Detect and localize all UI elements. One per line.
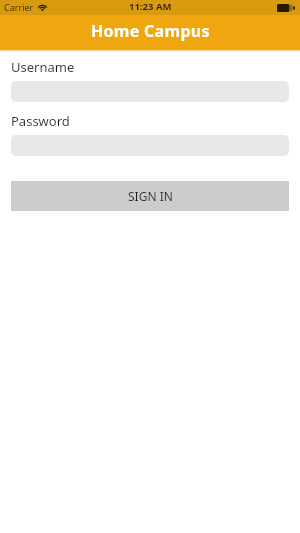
staticText: Username (11, 58, 75, 76)
button[interactable]: SIGN IN (11, 181, 289, 211)
staticText: SIGN IN (128, 188, 173, 204)
staticText: Carrier (4, 1, 34, 13)
staticText: Home Campus (91, 20, 210, 42)
staticText: Password (11, 112, 70, 130)
staticText: 11:23 AM (129, 0, 172, 13)
